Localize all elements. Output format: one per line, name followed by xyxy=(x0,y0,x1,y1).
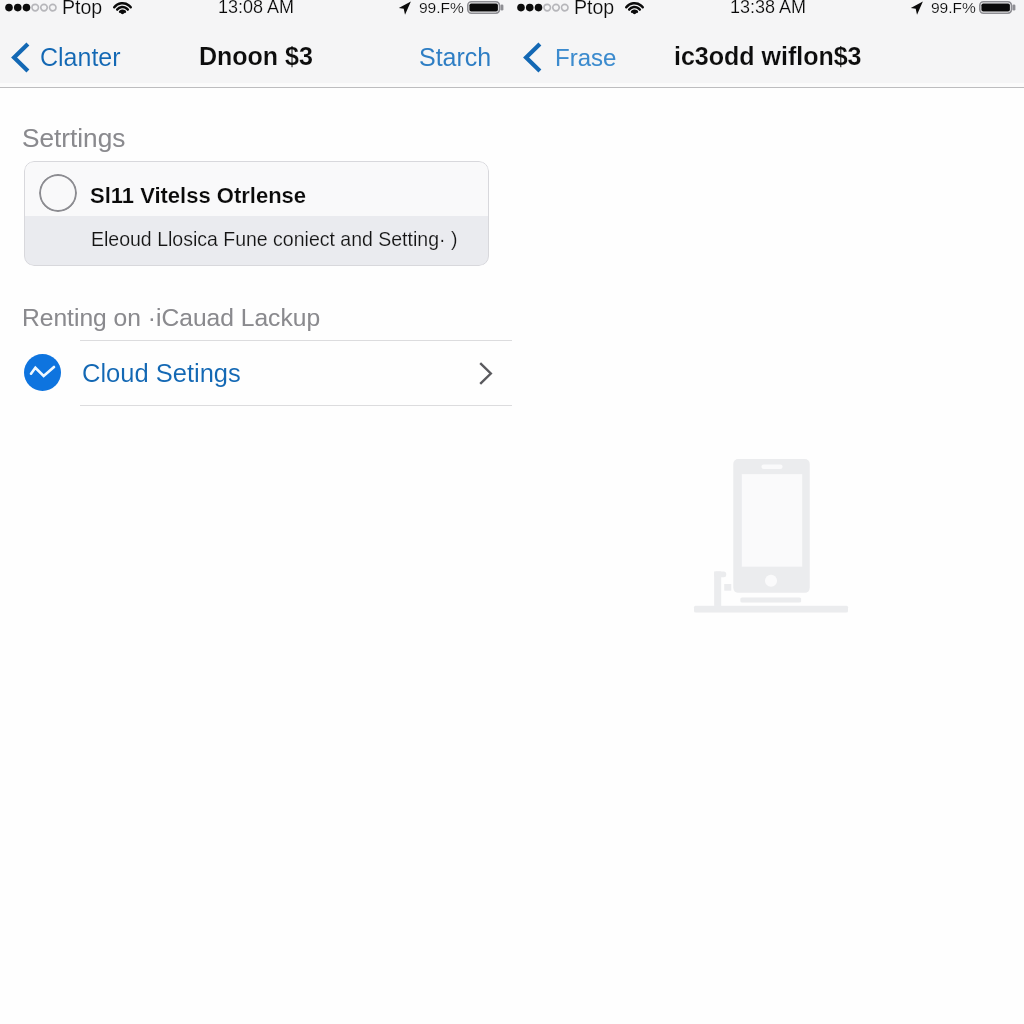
staticText: ic3odd wiflon$3 xyxy=(674,42,862,70)
staticText: Ptop xyxy=(574,0,615,18)
staticText: 99.F% xyxy=(419,0,464,16)
staticText: Renting on ·iCauad Lackup xyxy=(22,304,321,331)
staticText: Starch xyxy=(419,43,492,71)
staticText: Clanter xyxy=(40,43,121,71)
button[interactable]: Frase xyxy=(512,30,632,88)
staticText: Dnoon $3 xyxy=(199,42,313,70)
staticText: Eleoud Llosica Fune coniect and Setting·… xyxy=(91,228,458,250)
staticText: 13:38 AM xyxy=(730,0,807,17)
other: Open Cloud Settings xyxy=(479,362,492,385)
staticText: 99.F% xyxy=(931,0,976,16)
staticText: 13:08 AM xyxy=(218,0,295,17)
staticText: Frase xyxy=(555,44,617,71)
button[interactable]: Clanter xyxy=(0,30,120,88)
staticText: Sl11 Vitelss Otrlense xyxy=(90,183,307,208)
staticText: Setrtings xyxy=(22,123,126,152)
staticText: Cloud Setings xyxy=(82,359,241,387)
button[interactable]: Starch xyxy=(408,30,512,88)
button[interactable]: Sl11 Vitelss Otrlense xyxy=(24,161,489,266)
staticText: Ptop xyxy=(62,0,103,18)
button[interactable]: Cloud Setings xyxy=(0,340,512,406)
